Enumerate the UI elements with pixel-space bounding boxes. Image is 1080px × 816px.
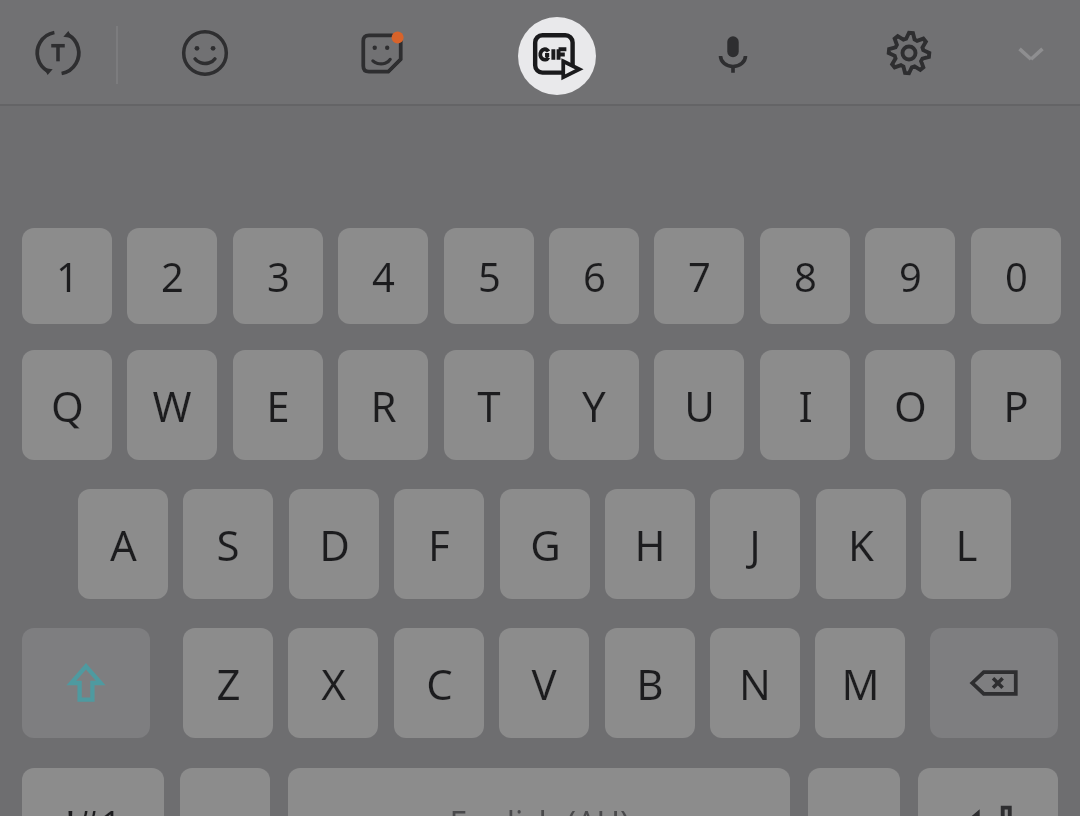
staticText: 2 <box>161 249 184 303</box>
button[interactable]: 3 <box>233 228 323 324</box>
button[interactable]: Stickers <box>348 19 416 87</box>
button[interactable]: U <box>654 350 744 460</box>
button[interactable]: 5 <box>444 228 534 324</box>
button[interactable]: A <box>78 489 168 599</box>
staticText: B <box>636 655 664 712</box>
button[interactable]: , <box>180 768 270 816</box>
staticText: P <box>1003 377 1029 434</box>
staticText: 0 <box>1005 249 1028 303</box>
staticText: X <box>321 655 346 712</box>
button[interactable]: Z <box>183 628 273 738</box>
staticText: S <box>216 516 240 573</box>
staticText: U <box>684 377 715 434</box>
staticText: English (AU) <box>449 801 630 816</box>
button[interactable]: O <box>865 350 955 460</box>
button[interactable]: Emoji <box>171 19 239 87</box>
staticText: J <box>749 516 761 573</box>
staticText: R <box>370 377 397 434</box>
staticText: Z <box>216 655 241 712</box>
staticText: 5 <box>478 249 501 303</box>
button[interactable]: 7 <box>654 228 744 324</box>
staticText: Q <box>51 377 84 434</box>
button[interactable]: W <box>127 350 217 460</box>
staticText: F <box>428 516 450 573</box>
button[interactable]: C <box>394 628 484 738</box>
button[interactable]: L <box>921 489 1011 599</box>
button[interactable]: J <box>710 489 800 599</box>
staticText: T <box>477 377 501 434</box>
button[interactable]: M <box>815 628 905 738</box>
button[interactable]: 0 <box>971 228 1061 324</box>
staticText: O <box>894 377 927 434</box>
button[interactable]: I <box>760 350 850 460</box>
staticText: I <box>798 377 813 434</box>
button[interactable]: 8 <box>760 228 850 324</box>
button[interactable]: Shift <box>22 628 150 738</box>
button[interactable]: Backspace <box>930 628 1058 738</box>
button[interactable]: 9 <box>865 228 955 324</box>
button[interactable]: E <box>233 350 323 460</box>
staticText: V <box>531 655 557 712</box>
button[interactable]: 6 <box>549 228 639 324</box>
button[interactable]: 4 <box>338 228 428 324</box>
staticText: K <box>848 516 874 573</box>
button[interactable]: B <box>605 628 695 738</box>
button[interactable]: Settings <box>875 19 943 87</box>
button[interactable]: 1 <box>22 228 112 324</box>
button[interactable]: F <box>394 489 484 599</box>
button[interactable]: !#1 <box>22 768 164 816</box>
button[interactable]: K <box>816 489 906 599</box>
button[interactable]: V <box>499 628 589 738</box>
staticText: G <box>530 516 561 573</box>
button[interactable]: . <box>808 768 900 816</box>
staticText: 4 <box>372 249 395 303</box>
button[interactable]: D <box>289 489 379 599</box>
staticText: 6 <box>583 249 606 303</box>
staticText: Y <box>582 377 606 434</box>
staticText: 3 <box>267 249 290 303</box>
button[interactable]: T <box>444 350 534 460</box>
button[interactable]: G <box>500 489 590 599</box>
staticText: 8 <box>794 249 817 303</box>
button[interactable]: Collapse <box>997 19 1065 87</box>
button[interactable]: H <box>605 489 695 599</box>
staticText: N <box>739 655 771 712</box>
button[interactable]: Q <box>22 350 112 460</box>
button[interactable]: N <box>710 628 800 738</box>
staticText: 7 <box>688 249 711 303</box>
button[interactable]: Voice input <box>699 19 767 87</box>
button[interactable]: 2 <box>127 228 217 324</box>
button[interactable]: P <box>971 350 1061 460</box>
staticText: C <box>426 655 453 712</box>
staticText: !#1 <box>65 797 122 816</box>
button[interactable]: Translate <box>24 19 92 87</box>
button[interactable]: S <box>183 489 273 599</box>
staticText: M <box>841 655 880 712</box>
staticText: E <box>266 377 290 434</box>
staticText: W <box>152 377 192 434</box>
staticText: H <box>634 516 666 573</box>
button[interactable]: Enter <box>918 768 1058 816</box>
button[interactable]: GIF <box>518 17 596 95</box>
button[interactable]: X <box>288 628 378 738</box>
button[interactable]: English (AU) <box>288 768 790 816</box>
staticText: D <box>319 516 350 573</box>
button[interactable]: Y <box>549 350 639 460</box>
staticText: 9 <box>899 249 922 303</box>
staticText: 1 <box>56 249 79 303</box>
button[interactable]: R <box>338 350 428 460</box>
staticText: L <box>955 516 978 573</box>
staticText: A <box>110 516 137 573</box>
